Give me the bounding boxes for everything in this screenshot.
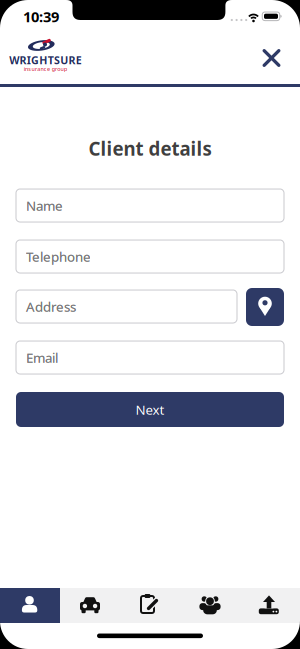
staticText: Name	[26, 197, 63, 214]
staticText: Address	[26, 298, 76, 315]
button[interactable]	[0, 588, 60, 623]
staticText: Email	[26, 349, 58, 366]
button[interactable]: Next	[16, 392, 284, 427]
staticText: Client details	[88, 136, 211, 161]
button[interactable]	[120, 588, 180, 623]
button[interactable]	[249, 36, 293, 80]
staticText: WRIGHTSURE	[9, 53, 82, 67]
staticText: Telephone	[26, 248, 91, 265]
staticText: Email	[26, 349, 58, 366]
staticText: Address	[26, 298, 76, 315]
staticText: Next	[135, 401, 164, 418]
staticText: insurance group	[24, 65, 67, 73]
button[interactable]	[240, 588, 300, 623]
textField[interactable]: Name	[26, 197, 284, 214]
button[interactable]	[180, 588, 240, 623]
button[interactable]	[246, 288, 284, 326]
staticText: Name	[26, 197, 63, 214]
textField[interactable]: Email	[26, 349, 284, 366]
button[interactable]	[60, 588, 120, 623]
staticText: 10:39	[23, 7, 59, 26]
staticText: Telephone	[26, 248, 91, 265]
textField[interactable]: Address	[26, 298, 237, 315]
textField[interactable]: Telephone	[26, 248, 284, 265]
